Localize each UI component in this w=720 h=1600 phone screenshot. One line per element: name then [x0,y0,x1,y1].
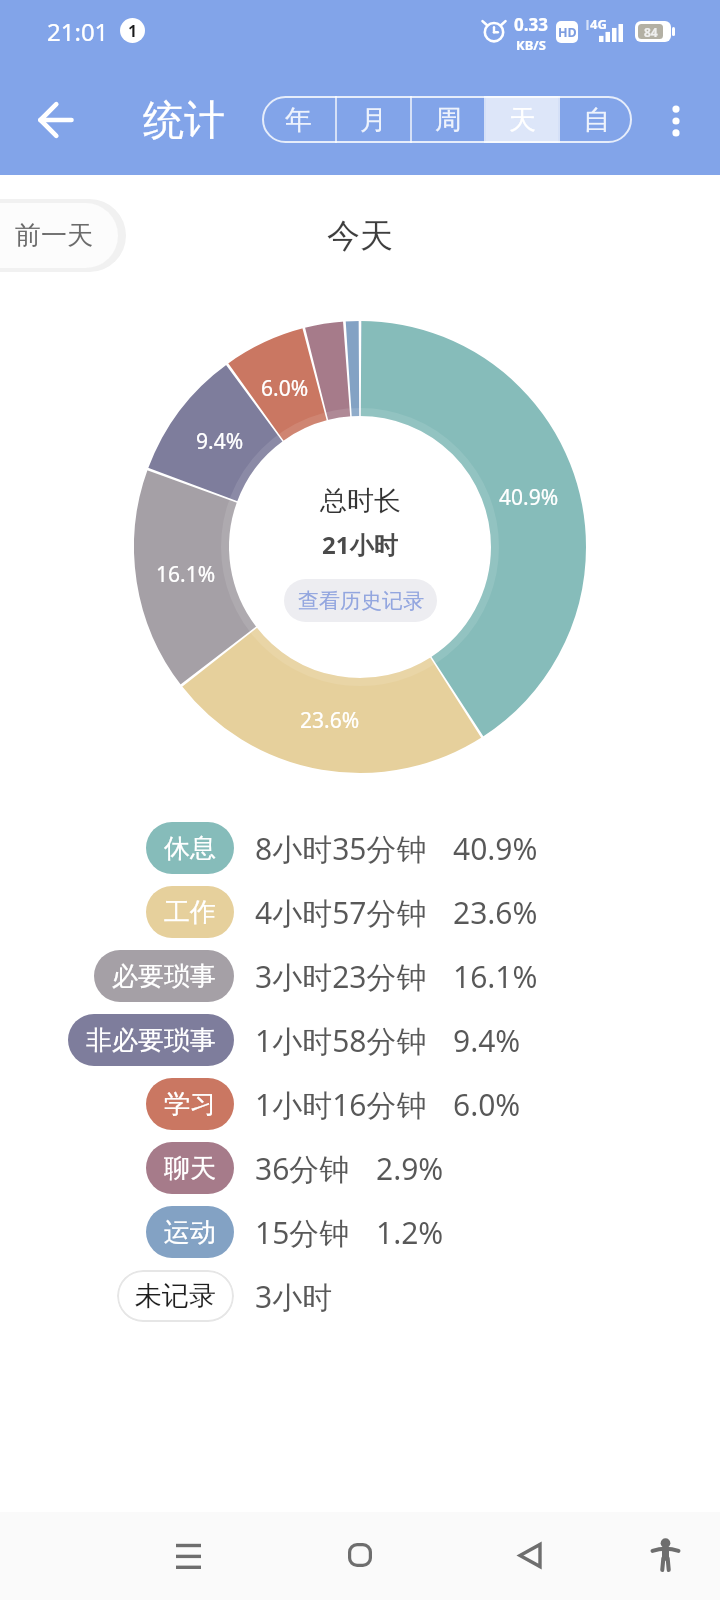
button[interactable]: 年 [262,96,335,143]
button[interactable]: 周 [412,96,484,143]
staticText: 15分钟 [255,1212,350,1253]
staticText: 休息 [164,832,216,865]
staticText: 1小时16分钟 [255,1084,427,1125]
staticText: 1 [128,20,138,42]
staticText: 1小时58分钟 [255,1020,427,1061]
button[interactable]: Recent apps [152,1520,224,1592]
button[interactable]: 天 [486,96,558,143]
staticText: 周 [435,103,462,137]
staticText: 工作 [164,896,216,929]
staticText: 16.1% [453,956,538,997]
button[interactable]: 月 [337,96,410,143]
staticText: 未记录 [135,1279,216,1313]
button[interactable]: Back [494,1519,566,1591]
staticText: 16.1% [156,560,216,589]
staticText: 0.33 [514,13,548,36]
staticText: 聊天 [164,1152,216,1185]
button[interactable]: 工作 [0,880,720,944]
staticText: HD [558,24,577,41]
button[interactable]: Home [324,1519,396,1591]
button[interactable]: More options [640,85,712,157]
staticText: 2.9% [376,1148,444,1189]
staticText: 3小时 [255,1276,333,1317]
staticText: 学习 [164,1088,216,1121]
staticText: 月 [360,103,387,137]
staticText: 今天 [327,215,393,257]
button[interactable]: 聊天 [0,1136,720,1200]
staticText: 6.0% [453,1084,521,1125]
staticText: 23.6% [300,706,360,735]
staticText: 统计 [143,95,225,145]
button[interactable]: 前一天 [0,203,118,268]
staticText: 21:01 [47,15,109,48]
staticText: 21小时 [322,528,398,561]
staticText: 1.2% [376,1212,444,1253]
button[interactable]: 必要琐事 [0,944,720,1008]
button[interactable]: 学习 [0,1072,720,1136]
staticText: 必要琐事 [112,960,216,993]
button[interactable]: 非必要琐事 [0,1008,720,1072]
staticText: 自 [583,103,610,137]
staticText: 23.6% [453,892,538,933]
button[interactable]: 自 [560,96,632,143]
staticText: 4小时57分钟 [255,892,427,933]
staticText: 运动 [164,1216,216,1249]
button[interactable]: Accessibility [629,1519,701,1591]
staticText: 4G [590,15,607,31]
staticText: 3小时23分钟 [255,956,427,997]
staticText: 40.9% [453,828,538,869]
staticText: 36分钟 [255,1148,350,1189]
staticText: 年 [285,103,312,137]
staticText: 6.0% [261,374,309,403]
button[interactable]: Back [20,84,92,156]
staticText: 前一天 [15,219,93,252]
staticText: 84 [644,24,658,39]
staticText: KB/S [516,36,546,54]
staticText: 9.4% [196,427,244,456]
staticText: 40.9% [499,483,559,512]
staticText: 天 [509,103,536,137]
staticText: 查看历史记录 [298,588,424,614]
button[interactable]: 未记录 [0,1264,720,1328]
button[interactable]: 休息 [0,816,720,880]
staticText: 8小时35分钟 [255,828,427,869]
button[interactable]: 运动 [0,1200,720,1264]
staticText: 9.4% [453,1020,521,1061]
button[interactable]: 查看历史记录 [284,579,437,622]
staticText: 总时长 [320,484,401,518]
staticText: 非必要琐事 [86,1024,216,1057]
